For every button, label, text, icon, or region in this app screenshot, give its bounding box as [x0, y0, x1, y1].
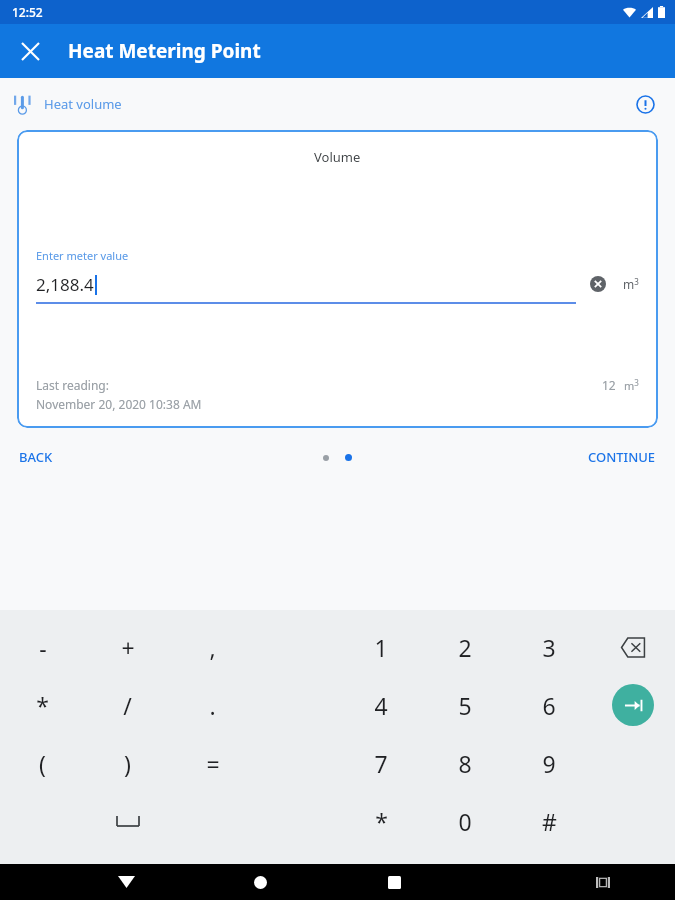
staticText: -	[39, 632, 47, 663]
staticText: Heat volume	[44, 95, 122, 113]
staticText: 0	[458, 806, 472, 837]
button[interactable]: ,	[170, 618, 255, 676]
staticText: 2,188.4	[36, 273, 94, 296]
button[interactable]: BACK	[0, 438, 72, 476]
button[interactable]: 9	[507, 734, 591, 792]
staticText: .	[209, 690, 216, 721]
button[interactable]: )	[85, 734, 170, 792]
button[interactable]: CONTINUE	[569, 438, 675, 476]
button[interactable]: 7	[339, 734, 423, 792]
staticText: +	[121, 632, 135, 663]
button[interactable]: 2	[423, 618, 507, 676]
staticText: 6	[542, 690, 556, 721]
button[interactable]: 1	[339, 618, 423, 676]
staticText: Volume	[314, 148, 361, 166]
button[interactable]: Home	[242, 864, 278, 900]
button[interactable]: 4	[339, 676, 423, 734]
button[interactable]: Switch keyboard	[585, 864, 621, 900]
button[interactable]: Space	[85, 792, 170, 850]
button[interactable]: (	[0, 734, 85, 792]
button[interactable]: Enter	[591, 676, 675, 734]
button[interactable]: 6	[507, 676, 591, 734]
button[interactable]: Info	[629, 88, 661, 120]
staticText: /	[123, 690, 132, 721]
staticText: ,	[209, 632, 216, 663]
staticText: Heat Metering Point	[68, 38, 261, 64]
staticText: 1	[374, 632, 388, 663]
staticText: CONTINUE	[588, 448, 656, 466]
button[interactable]: -	[0, 618, 85, 676]
staticText: 9	[542, 748, 556, 779]
staticText: 7	[374, 748, 388, 779]
button[interactable]: /	[85, 676, 170, 734]
button[interactable]: Back	[108, 864, 144, 900]
button[interactable]: 5	[423, 676, 507, 734]
button[interactable]: .	[170, 676, 255, 734]
staticText: *	[36, 690, 49, 721]
staticText: 12:52	[12, 4, 43, 20]
button[interactable]: *	[339, 792, 423, 850]
staticText: *	[375, 806, 388, 837]
button[interactable]: *	[0, 676, 85, 734]
button[interactable]: Backspace	[591, 618, 675, 676]
button[interactable]: 0	[423, 792, 507, 850]
staticText: BACK	[19, 448, 53, 466]
staticText: 5	[458, 690, 472, 721]
button[interactable]: Recent apps	[376, 864, 412, 900]
button[interactable]: +	[85, 618, 170, 676]
staticText: #	[542, 806, 557, 837]
staticText: 3	[542, 632, 556, 663]
staticText: 4	[374, 690, 388, 721]
button[interactable]: =	[170, 734, 255, 792]
staticText: 2	[458, 632, 472, 663]
staticText: )	[124, 748, 131, 779]
button[interactable]: 8	[423, 734, 507, 792]
staticText: m3	[624, 377, 639, 393]
staticText: November 20, 2020 10:38 AM	[36, 396, 202, 412]
button[interactable]: Close	[8, 29, 52, 73]
button[interactable]: Clear	[583, 269, 613, 299]
staticText: =	[206, 748, 220, 779]
button[interactable]: 3	[507, 618, 591, 676]
staticText: Enter meter value	[36, 248, 129, 263]
staticText: 8	[458, 748, 472, 779]
staticText: Last reading:	[36, 377, 109, 393]
staticText: 12	[602, 377, 616, 393]
staticText: m3	[623, 276, 639, 292]
staticText: (	[39, 748, 46, 779]
button[interactable]: #	[507, 792, 591, 850]
